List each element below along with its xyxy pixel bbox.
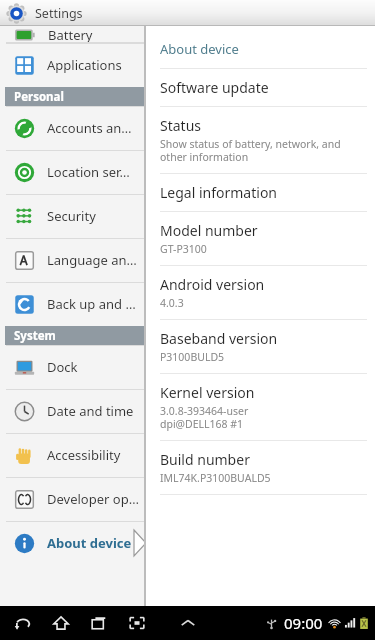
staticText: Back up and … xyxy=(47,295,136,313)
staticText: Baseband version xyxy=(160,329,278,348)
staticText: Personal xyxy=(14,89,64,105)
staticText: Legal information xyxy=(160,183,278,202)
staticText: Developer op… xyxy=(47,490,139,508)
staticText: Dock xyxy=(47,358,78,376)
button[interactable]: Screenshot xyxy=(124,608,150,638)
staticText: Date and time xyxy=(47,402,134,420)
button[interactable]: About device xyxy=(0,521,146,565)
button[interactable]: Dock xyxy=(0,345,146,389)
button[interactable]: Applications xyxy=(0,43,146,87)
button[interactable]: Software update xyxy=(160,69,367,106)
staticText: 4.0.3 xyxy=(160,296,184,310)
button[interactable]: Battery xyxy=(0,26,146,43)
button[interactable]: Security xyxy=(0,194,146,238)
button[interactable]: Status xyxy=(160,107,367,173)
staticText: IML74K.P3100BUALD5 xyxy=(160,471,271,485)
button[interactable]: Date and time xyxy=(0,389,146,433)
staticText: Android version xyxy=(160,275,265,294)
button[interactable]: Accounts an… xyxy=(0,106,146,150)
staticText: Model number xyxy=(160,221,258,240)
staticText: Build number xyxy=(160,450,250,469)
button[interactable]: Baseband version xyxy=(160,320,367,373)
staticText: Settings xyxy=(35,5,83,22)
staticText: Software update xyxy=(160,78,269,97)
button[interactable]: Show hidden icons xyxy=(176,611,200,635)
button[interactable]: Build number xyxy=(160,441,367,494)
staticText: Status xyxy=(160,116,202,135)
button[interactable]: Android version xyxy=(160,266,367,319)
staticText: Language an… xyxy=(47,251,137,269)
button[interactable]: Recent apps xyxy=(86,608,112,638)
staticText: About device xyxy=(47,534,132,552)
staticText: Security xyxy=(47,207,96,225)
button[interactable]: Location ser… xyxy=(0,150,146,194)
staticText: System xyxy=(14,328,56,344)
staticText: Location ser… xyxy=(47,163,130,181)
button[interactable]: Model number xyxy=(160,212,367,265)
button[interactable]: Accessibility xyxy=(0,433,146,477)
staticText: 09:00 xyxy=(284,613,323,633)
staticText: Show status of battery, network, and oth… xyxy=(160,137,341,164)
staticText: Battery xyxy=(48,26,93,43)
button[interactable]: Developer op… xyxy=(0,477,146,521)
staticText: Accounts an… xyxy=(47,119,132,137)
staticText: Kernel version xyxy=(160,383,255,402)
staticText: Accessibility xyxy=(47,446,121,464)
button[interactable]: Language an… xyxy=(0,238,146,282)
button[interactable]: Legal information xyxy=(160,174,367,211)
button[interactable]: Home xyxy=(48,608,74,638)
staticText: About device xyxy=(160,40,239,58)
staticText: P3100BULD5 xyxy=(160,350,225,364)
button[interactable]: Back up and … xyxy=(0,282,146,326)
staticText: 3.0.8-393464-user dpi@DELL168 #1 xyxy=(160,404,249,431)
button[interactable]: Kernel version xyxy=(160,374,367,440)
staticText: Applications xyxy=(47,56,122,74)
staticText: GT-P3100 xyxy=(160,242,207,256)
button[interactable]: Back xyxy=(10,608,36,638)
